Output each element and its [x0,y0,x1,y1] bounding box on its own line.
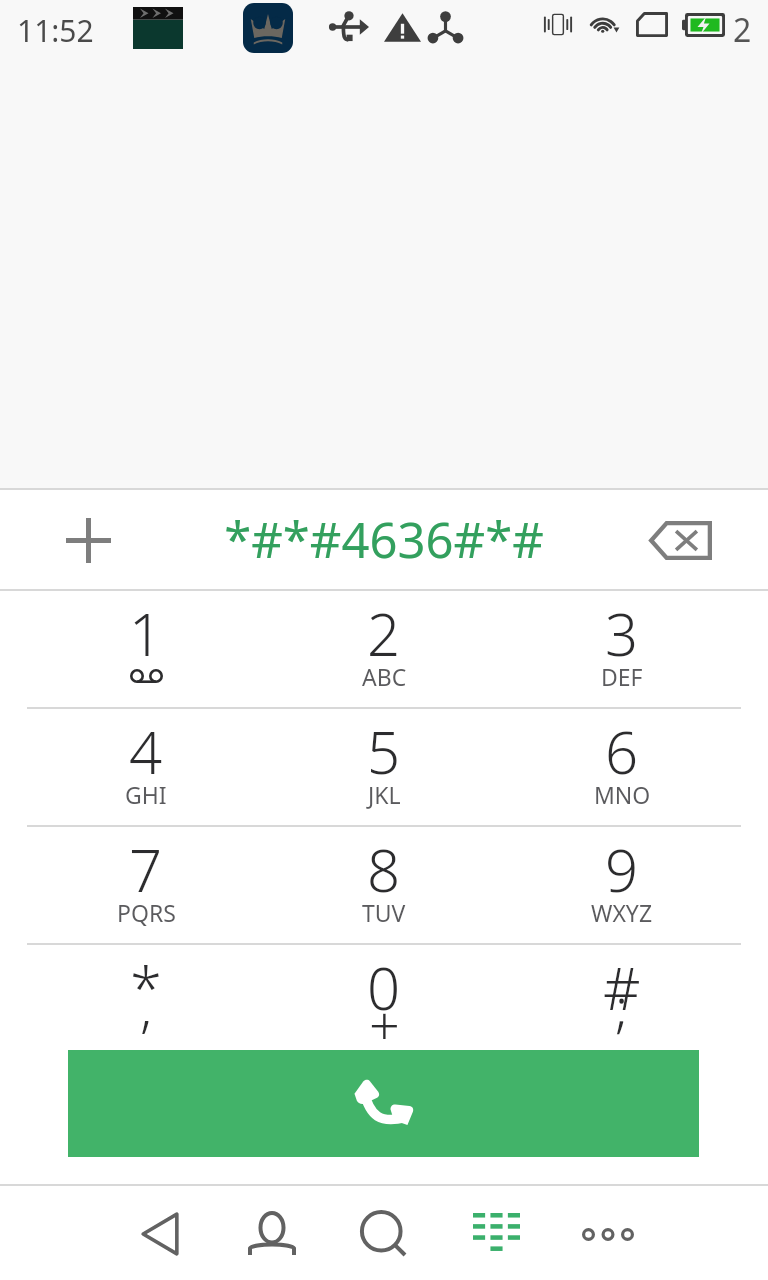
button[interactable]: 1 [27,591,265,707]
staticText: # [603,948,641,1027]
staticText: 0 [367,948,401,1027]
button[interactable]: Dialpad [440,1186,552,1280]
button[interactable]: 3 [503,591,741,707]
staticText: * [130,948,162,1027]
staticText: 7 [129,830,163,909]
staticText: 6 [605,712,639,791]
button[interactable]: Call [68,1050,699,1157]
button[interactable]: Contacts [216,1186,328,1280]
staticText: MNO [594,779,651,810]
button[interactable]: 6 [503,709,741,825]
staticText: DEF [601,661,643,692]
button[interactable]: 8 [265,827,503,943]
staticText: ; [615,969,629,1043]
staticText: 3 [605,594,639,673]
staticText: 2 [733,8,752,52]
button[interactable]: 9 [503,827,741,943]
button[interactable]: Back [104,1186,216,1280]
staticText: 1 [129,594,163,673]
button[interactable]: Search [328,1186,440,1280]
button[interactable]: More options [552,1186,664,1280]
button[interactable]: Backspace [639,499,721,581]
button[interactable]: # [503,945,741,1065]
button[interactable]: 7 [27,827,265,943]
button[interactable]: 4 [27,709,265,825]
staticText: + [369,987,400,1061]
button[interactable]: Add to contacts [50,502,126,578]
staticText: WXYZ [591,897,653,928]
staticText: ABC [362,661,407,692]
button[interactable]: 0 [265,945,503,1065]
staticText: 11:52 [17,10,94,51]
staticText: 4 [129,712,163,791]
staticText: 2 [367,594,401,673]
staticText: 5 [367,712,401,791]
button[interactable]: * [27,945,265,1065]
staticText: *#*#4636#*# [224,506,544,573]
staticText: , [140,969,153,1043]
staticText: JKL [368,779,401,810]
button[interactable]: 5 [265,709,503,825]
staticText: PQRS [117,897,176,928]
staticText: TUV [362,897,406,928]
staticText: 9 [605,830,639,909]
button[interactable]: 2 [265,591,503,707]
staticText: GHI [125,779,167,810]
staticText: 8 [367,830,401,909]
